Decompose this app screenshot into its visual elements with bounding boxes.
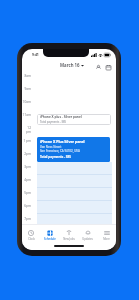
staticText: New Jobs — [63, 237, 75, 241]
button[interactable]: Clock — [22, 225, 40, 242]
staticText: 11am — [22, 113, 31, 117]
staticText: 3pm — [24, 165, 31, 169]
button[interactable]: iPhone X plus - Silver panel — [37, 114, 111, 125]
button[interactable]: Calendar view — [104, 63, 113, 72]
staticText: iPhone X plus - Silver panel — [40, 115, 82, 119]
staticText: 7pm — [24, 217, 31, 221]
staticText: More — [103, 237, 110, 241]
button[interactable]: iPhone X Plus Silver panel — [37, 137, 110, 162]
staticText: Updates — [82, 237, 93, 241]
button[interactable]: March 16 — [60, 62, 84, 68]
button[interactable]: New Jobs — [59, 225, 78, 242]
staticText: San Francisco, CA 94102, USA — [40, 149, 80, 153]
button[interactable]: Profile — [94, 63, 103, 72]
staticText: iPhone X Plus Silver panel — [40, 139, 85, 144]
staticText: 1 pm — [23, 139, 31, 143]
staticText: 2pm — [24, 152, 31, 156]
staticText: Schedule — [44, 237, 56, 241]
button[interactable]: Schedule — [40, 225, 59, 242]
staticText: Total payments - $85 — [40, 120, 67, 124]
staticText: 8am — [24, 74, 31, 78]
staticText: 10am — [22, 100, 31, 104]
staticText: 6pm — [24, 204, 31, 208]
staticText: March 16 — [60, 62, 80, 68]
staticText: 9am — [24, 87, 31, 91]
staticText: Clock — [28, 237, 35, 241]
staticText: 12 pm — [22, 126, 31, 134]
staticText: 4pm — [24, 178, 31, 182]
button[interactable]: More — [97, 225, 116, 242]
button[interactable]: Updates — [78, 225, 97, 242]
staticText: Total payments - $85 — [40, 155, 72, 159]
staticText: 9:41 — [32, 52, 39, 57]
staticText: 5pm — [24, 191, 31, 195]
staticText: Van Ness Street — [40, 145, 62, 149]
